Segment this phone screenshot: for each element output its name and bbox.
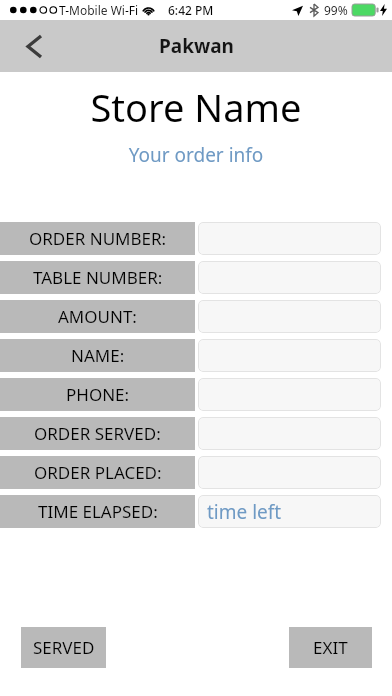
staticText: ORDER PLACED: <box>34 461 162 484</box>
staticText: Pakwan <box>159 33 234 59</box>
button[interactable]: ORDER PLACED: <box>0 456 195 489</box>
button[interactable]: NAME: <box>0 339 195 372</box>
button[interactable] <box>198 339 381 372</box>
button[interactable]: ORDER SERVED: <box>0 417 195 450</box>
staticText: NAME: <box>71 344 125 367</box>
staticText: 99% <box>324 2 348 18</box>
staticText: ORDER NUMBER: <box>29 227 167 250</box>
button[interactable] <box>198 456 381 489</box>
button[interactable]: AMOUNT: <box>0 300 195 333</box>
staticText: PHONE: <box>66 383 130 406</box>
staticText: 6:42 PM <box>168 2 214 18</box>
staticText: Your order info <box>0 142 392 168</box>
staticText: TIME ELAPSED: <box>38 500 158 523</box>
button[interactable] <box>198 300 381 333</box>
staticText: TABLE NUMBER: <box>33 266 163 289</box>
button[interactable]: Back <box>12 24 56 68</box>
button[interactable]: SERVED <box>21 627 106 668</box>
staticText: ORDER SERVED: <box>34 422 161 445</box>
staticText: T-Mobile Wi-Fi <box>59 2 139 18</box>
button[interactable] <box>198 378 381 411</box>
button[interactable]: PHONE: <box>0 378 195 411</box>
staticText: EXIT <box>313 636 348 659</box>
button[interactable]: EXIT <box>289 627 372 668</box>
staticText: Store Name <box>0 81 392 133</box>
button[interactable] <box>198 417 381 450</box>
button[interactable]: time left <box>198 495 381 528</box>
button[interactable] <box>198 261 381 294</box>
staticText: AMOUNT: <box>58 305 137 328</box>
button[interactable] <box>198 222 381 255</box>
button[interactable]: ORDER NUMBER: <box>0 222 195 255</box>
button[interactable]: TABLE NUMBER: <box>0 261 195 294</box>
button[interactable]: TIME ELAPSED: <box>0 495 195 528</box>
staticText: time left <box>207 499 282 525</box>
staticText: SERVED <box>33 636 95 659</box>
